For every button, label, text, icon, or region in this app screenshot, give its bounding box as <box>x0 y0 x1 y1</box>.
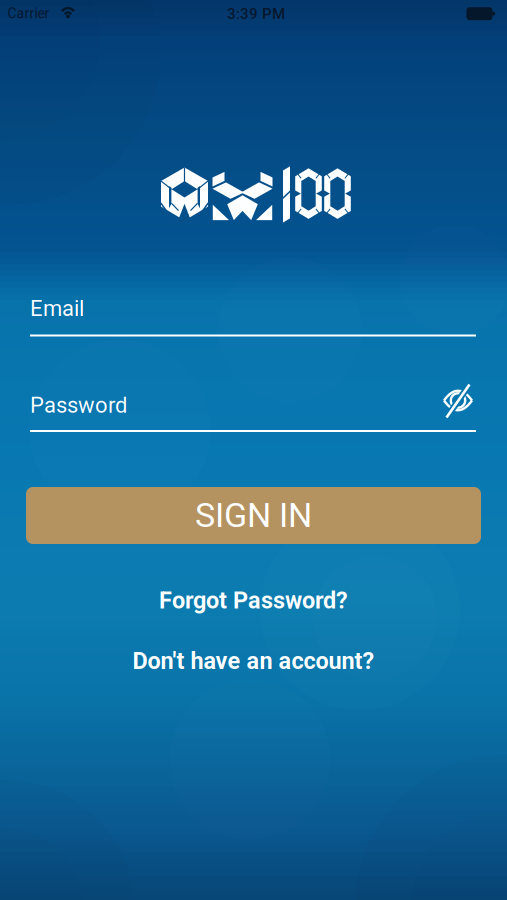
staticText: SIGN IN <box>195 496 312 535</box>
staticText: Don't have an account? <box>132 647 374 675</box>
button[interactable]: Forgot Password? <box>159 587 348 614</box>
button[interactable]: Show password <box>436 378 480 422</box>
button[interactable]: SIGN IN <box>26 487 481 544</box>
staticText: Forgot Password? <box>159 587 348 614</box>
button[interactable]: Don't have an account? <box>132 647 374 675</box>
staticText: Carrier <box>7 5 49 22</box>
staticText: 3:39 PM <box>227 5 285 23</box>
staticText: Password <box>30 392 127 418</box>
staticText: Email <box>30 296 84 321</box>
